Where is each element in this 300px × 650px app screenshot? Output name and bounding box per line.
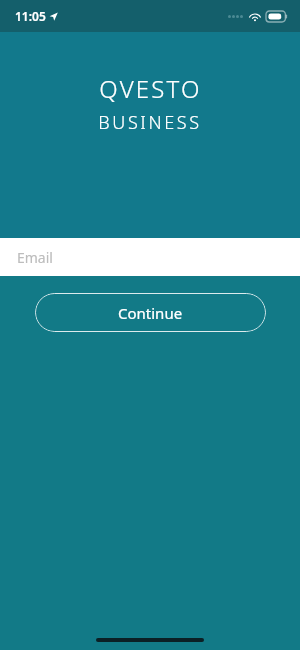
button[interactable]: Continue [35,293,266,332]
button[interactable]: Email [0,238,300,276]
staticText: 11:05 [15,8,46,24]
staticText: BUSINESS [98,110,202,135]
staticText: Email [17,248,53,267]
staticText: Continue [118,303,183,323]
staticText: QVESTO [99,72,202,105]
